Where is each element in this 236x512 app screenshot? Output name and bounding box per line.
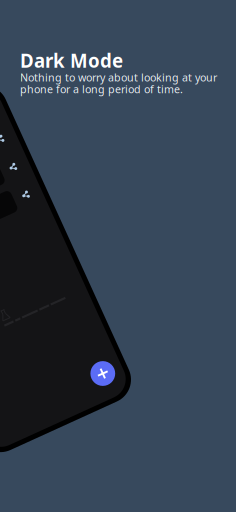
staticText: Dark Mode [20, 48, 123, 73]
staticText: Nothing to worry about looking at your [20, 70, 217, 84]
staticText: phone for a long period of time. [20, 82, 183, 96]
